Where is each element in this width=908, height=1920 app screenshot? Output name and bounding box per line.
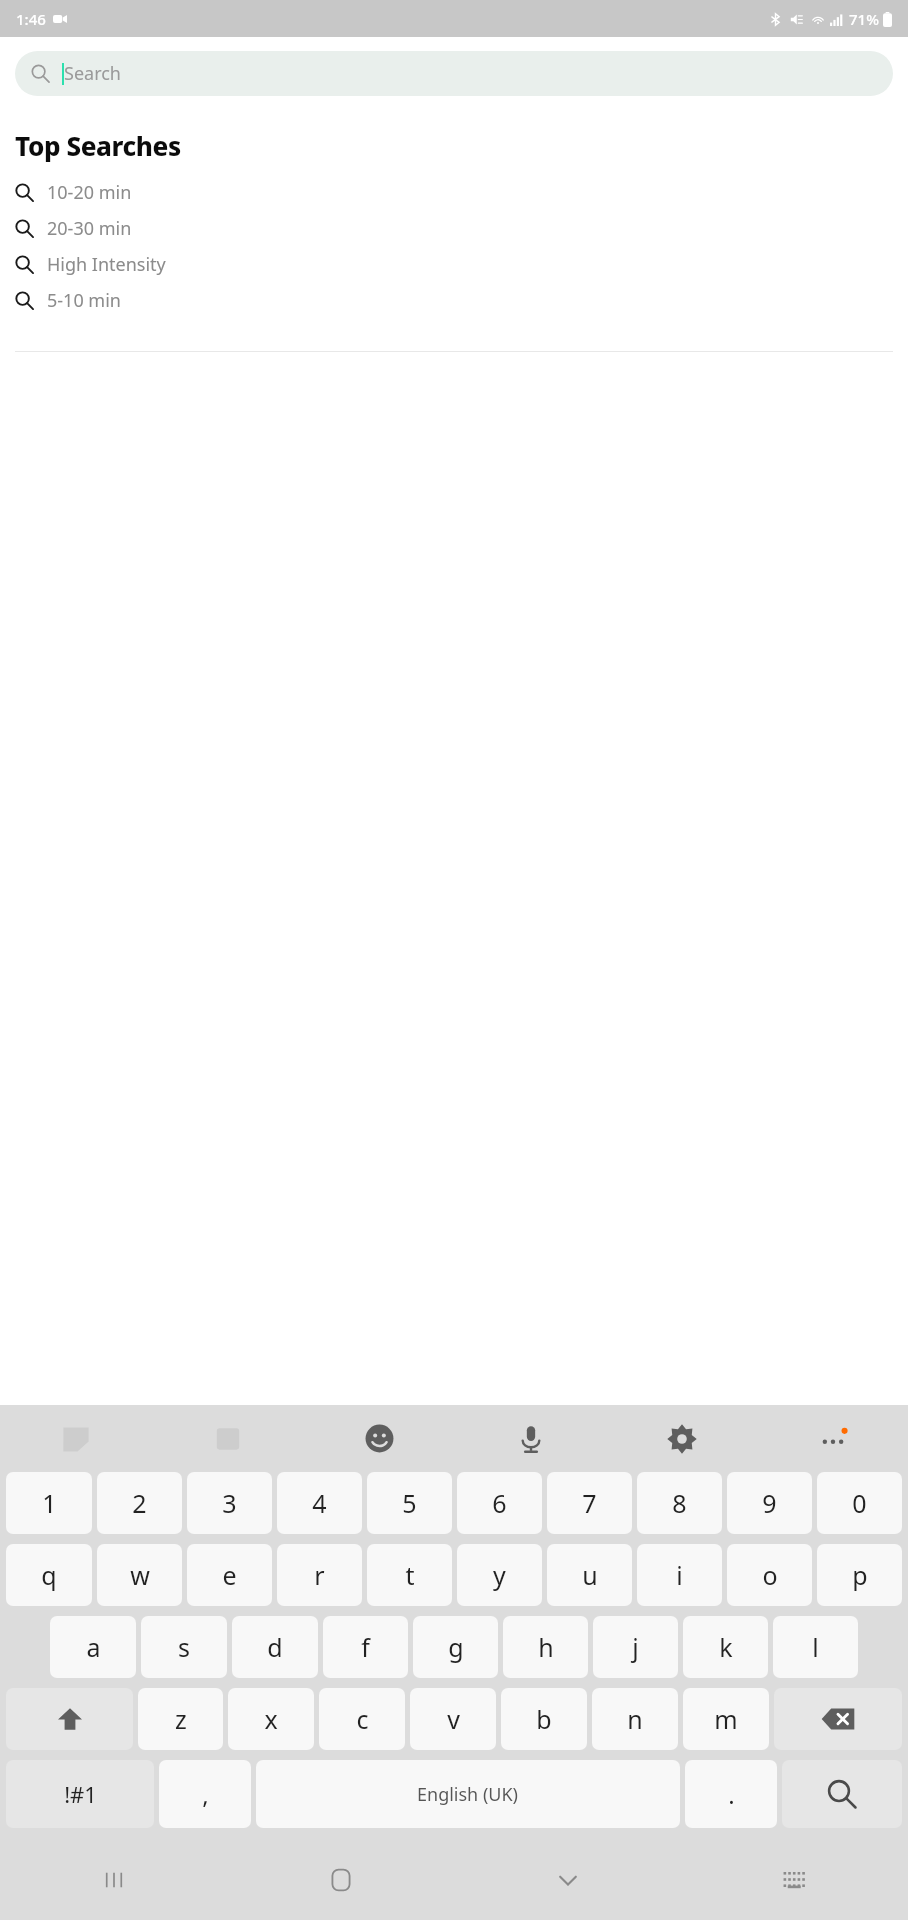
staticText: 10-20 min xyxy=(47,180,132,205)
staticText: d xyxy=(267,1630,283,1664)
button[interactable]: . xyxy=(685,1760,777,1828)
button[interactable]: Stickers xyxy=(0,1405,152,1472)
button[interactable]: Backspace xyxy=(774,1688,902,1750)
staticText: !#1 xyxy=(64,1779,97,1809)
staticText: h xyxy=(538,1630,554,1664)
button[interactable]: 8 xyxy=(637,1472,722,1534)
staticText: 0 xyxy=(852,1486,867,1520)
button[interactable]: Recents xyxy=(0,1840,227,1920)
button[interactable]: 9 xyxy=(727,1472,812,1534)
button[interactable]: Home xyxy=(227,1840,454,1920)
button[interactable]: t xyxy=(367,1544,452,1606)
button[interactable]: Emoji xyxy=(304,1405,455,1472)
button[interactable]: d xyxy=(232,1616,318,1678)
staticText: x xyxy=(264,1702,278,1736)
staticText: u xyxy=(582,1558,598,1592)
button[interactable]: v xyxy=(410,1688,496,1750)
staticText: r xyxy=(314,1558,325,1592)
button[interactable]: b xyxy=(501,1688,587,1750)
staticText: 1 xyxy=(42,1486,57,1520)
staticText: English (UK) xyxy=(417,1782,519,1807)
staticText: 6 xyxy=(492,1486,507,1520)
staticText: a xyxy=(86,1630,101,1664)
button[interactable]: GIF xyxy=(152,1405,304,1472)
staticText: , xyxy=(202,1778,209,1811)
button[interactable]: 4 xyxy=(277,1472,362,1534)
staticText: 1:46 xyxy=(16,9,46,29)
button[interactable]: Search xyxy=(15,51,893,96)
staticText: 5-10 min xyxy=(47,288,121,313)
button[interactable]: m xyxy=(683,1688,769,1750)
button[interactable]: e xyxy=(187,1544,272,1606)
button[interactable]: !#1 xyxy=(6,1760,154,1828)
button[interactable]: Search xyxy=(782,1760,902,1828)
staticText: 3 xyxy=(222,1486,237,1520)
button[interactable]: 5 xyxy=(367,1472,452,1534)
staticText: c xyxy=(356,1702,369,1736)
button[interactable]: f xyxy=(323,1616,408,1678)
staticText: v xyxy=(447,1702,460,1736)
button[interactable]: c xyxy=(319,1688,405,1750)
staticText: Top Searches xyxy=(15,128,181,163)
button[interactable]: 3 xyxy=(187,1472,272,1534)
staticText: 2 xyxy=(132,1486,147,1520)
button[interactable]: Switch keyboard xyxy=(681,1840,908,1920)
staticText: f xyxy=(361,1630,370,1664)
button[interactable]: r xyxy=(277,1544,362,1606)
button[interactable]: Keyboard settings xyxy=(606,1405,757,1472)
button[interactable]: x xyxy=(228,1688,314,1750)
button[interactable]: z xyxy=(138,1688,223,1750)
button[interactable]: Voice input xyxy=(455,1405,606,1472)
button[interactable]: Shift xyxy=(6,1688,133,1750)
button[interactable]: g xyxy=(413,1616,498,1678)
button[interactable]: a xyxy=(50,1616,136,1678)
staticText: Search xyxy=(64,61,121,86)
button[interactable]: More options xyxy=(757,1405,908,1472)
button[interactable]: 2 xyxy=(97,1472,182,1534)
button[interactable]: l xyxy=(773,1616,858,1678)
button[interactable]: q xyxy=(6,1544,92,1606)
button[interactable]: n xyxy=(592,1688,678,1750)
button[interactable]: 10-20 min xyxy=(0,177,908,207)
button[interactable]: i xyxy=(637,1544,722,1606)
button[interactable]: 7 xyxy=(547,1472,632,1534)
staticText: 7 xyxy=(582,1486,597,1520)
staticText: n xyxy=(627,1702,643,1736)
staticText: b xyxy=(536,1702,552,1736)
staticText: g xyxy=(448,1630,464,1664)
staticText: . xyxy=(728,1778,735,1811)
button[interactable]: o xyxy=(727,1544,812,1606)
staticText: e xyxy=(222,1558,237,1592)
button[interactable]: High Intensity xyxy=(0,249,908,279)
button[interactable]: English (UK) xyxy=(256,1760,680,1828)
staticText: y xyxy=(493,1558,506,1592)
button[interactable]: 20-30 min xyxy=(0,213,908,243)
staticText: p xyxy=(852,1558,868,1592)
button[interactable]: h xyxy=(503,1616,588,1678)
button[interactable]: s xyxy=(141,1616,227,1678)
button[interactable]: 1 xyxy=(6,1472,92,1534)
staticText: 5 xyxy=(402,1486,417,1520)
button[interactable]: , xyxy=(159,1760,251,1828)
staticText: j xyxy=(632,1630,639,1664)
button[interactable]: Hide keyboard xyxy=(454,1840,681,1920)
button[interactable]: 0 xyxy=(817,1472,902,1534)
staticText: 8 xyxy=(672,1486,687,1520)
staticText: q xyxy=(41,1558,57,1592)
button[interactable]: p xyxy=(817,1544,902,1606)
staticText: s xyxy=(178,1630,190,1664)
staticText: w xyxy=(130,1558,150,1592)
staticText: High Intensity xyxy=(47,252,166,277)
button[interactable]: w xyxy=(97,1544,182,1606)
button[interactable]: j xyxy=(593,1616,678,1678)
staticText: 9 xyxy=(762,1486,777,1520)
staticText: 71% xyxy=(849,9,879,29)
button[interactable]: u xyxy=(547,1544,632,1606)
staticText: o xyxy=(762,1558,778,1592)
button[interactable]: 5-10 min xyxy=(0,285,908,315)
button[interactable]: 6 xyxy=(457,1472,542,1534)
staticText: 4 xyxy=(312,1486,327,1520)
staticText: l xyxy=(812,1630,819,1664)
button[interactable]: k xyxy=(683,1616,768,1678)
button[interactable]: y xyxy=(457,1544,542,1606)
